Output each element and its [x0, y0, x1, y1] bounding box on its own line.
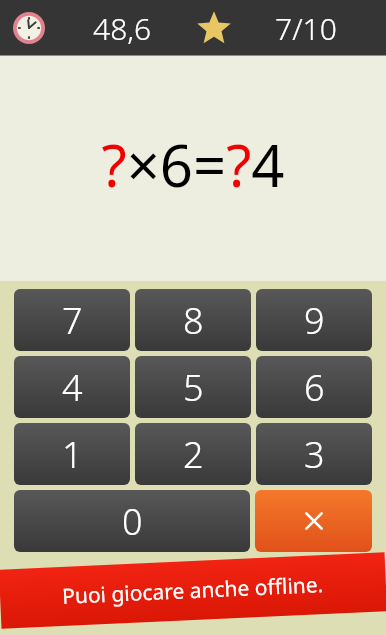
button[interactable]: 6 — [256, 356, 372, 418]
button[interactable]: 0 — [14, 490, 250, 552]
button[interactable]: 7 — [14, 289, 130, 351]
staticText: 6 — [304, 363, 325, 412]
staticText: 8 — [183, 296, 204, 345]
staticText: 7/10 — [275, 8, 337, 49]
staticText: 1 — [62, 430, 83, 479]
staticText: Puoi giocare anche offline. — [61, 570, 324, 611]
button[interactable]: 9 — [256, 289, 372, 351]
button[interactable]: 4 — [14, 356, 130, 418]
staticText: 7 — [62, 296, 83, 345]
staticText: 3 — [304, 430, 325, 479]
button[interactable]: Puoi giocare anche offline. — [0, 552, 386, 629]
button[interactable]: 2 — [135, 423, 251, 485]
staticText: 0 — [122, 497, 143, 546]
button[interactable]: 8 — [135, 289, 251, 351]
button[interactable]: 1 — [14, 423, 130, 485]
staticText: ?×6=?4 — [101, 125, 285, 204]
button[interactable]: 3 — [256, 423, 372, 485]
staticText: 2 — [183, 430, 204, 479]
button[interactable]: Delete — [255, 490, 372, 552]
staticText: 4 — [62, 363, 83, 412]
staticText: 5 — [183, 363, 204, 412]
button[interactable]: 5 — [135, 356, 251, 418]
staticText: 48,6 — [93, 8, 152, 49]
staticText: 9 — [304, 296, 325, 345]
